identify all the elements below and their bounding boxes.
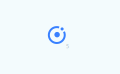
staticText: 5 bbox=[66, 43, 69, 50]
